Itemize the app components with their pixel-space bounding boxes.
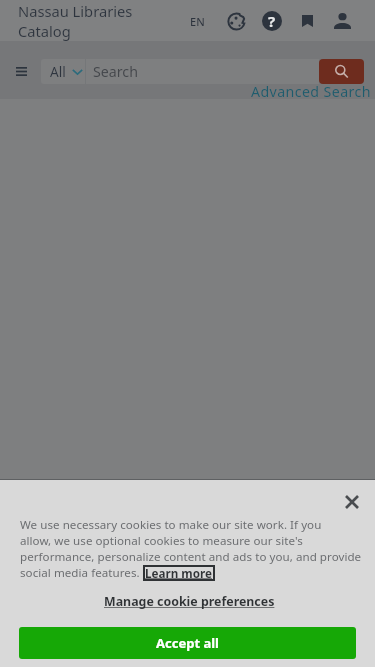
button[interactable]: Cookie settings xyxy=(226,10,248,32)
button[interactable]: Close xyxy=(340,490,364,514)
staticText: All xyxy=(50,62,66,81)
staticText: ? xyxy=(268,11,276,31)
staticText: Accept all xyxy=(156,634,219,652)
staticText: Search xyxy=(93,62,138,81)
button[interactable]: Help xyxy=(261,10,283,32)
staticText: performance, personalize content and ads… xyxy=(20,549,362,565)
staticText: Nassau Libraries xyxy=(18,1,133,21)
button[interactable]: Advanced Search xyxy=(251,82,371,101)
button[interactable]: Accept all xyxy=(19,627,356,659)
staticText: Catalog xyxy=(18,21,71,41)
button[interactable]: Manage cookie preferences xyxy=(104,591,275,611)
staticText: We use necessary cookies to make our sit… xyxy=(20,517,322,533)
staticText: Advanced Search xyxy=(251,82,371,101)
button[interactable]: Saved items xyxy=(296,10,318,32)
staticText: Learn more xyxy=(145,565,213,581)
button[interactable]: Account xyxy=(331,10,353,32)
button[interactable]: Search xyxy=(319,59,364,84)
button[interactable]: Learn more xyxy=(145,565,213,581)
staticText: EN xyxy=(190,14,205,29)
button[interactable]: Open menu xyxy=(10,60,32,82)
button[interactable]: EN xyxy=(186,14,209,29)
button[interactable]: Nassau Libraries xyxy=(18,1,133,41)
staticText: social media features. xyxy=(20,565,143,581)
staticText: allow, we use optional cookies to measur… xyxy=(20,533,303,549)
button[interactable]: All xyxy=(41,59,85,84)
staticText: Manage cookie preferences xyxy=(104,593,275,610)
